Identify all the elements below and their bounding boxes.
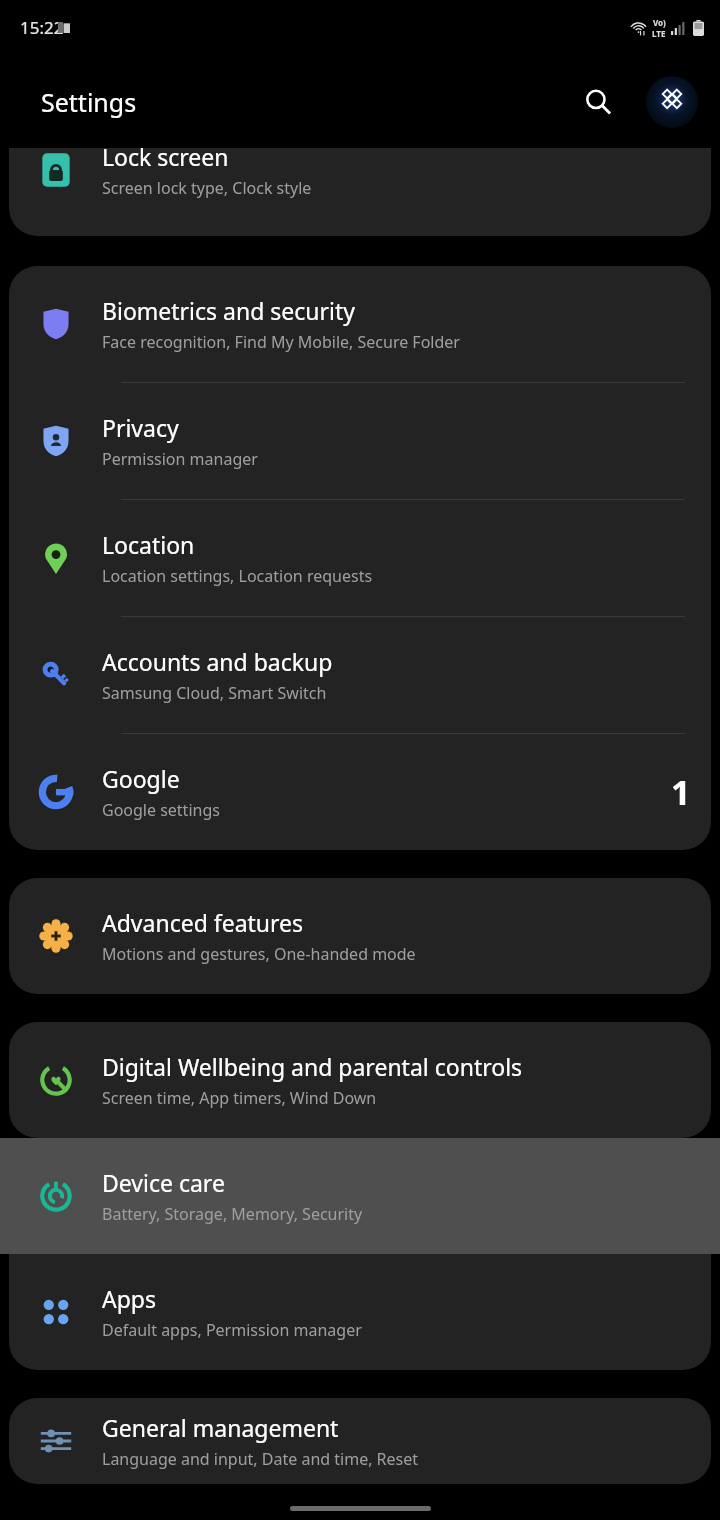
- staticText: Advanced features: [102, 907, 304, 938]
- staticText: Accounts and backup: [102, 646, 333, 677]
- staticText: Samsung Cloud, Smart Switch: [102, 682, 327, 704]
- staticText: Digital Wellbeing and parental controls: [102, 1051, 523, 1082]
- staticText: Language and input, Date and time, Reset: [102, 1448, 419, 1470]
- staticText: Biometrics and security: [102, 295, 356, 326]
- button[interactable]: Lock screen: [9, 148, 711, 214]
- staticText: Face recognition, Find My Mobile, Secure…: [102, 331, 460, 353]
- staticText: Screen time, App timers, Wind Down: [102, 1087, 377, 1109]
- button[interactable]: Biometrics and security: [9, 266, 711, 382]
- button[interactable]: Apps: [9, 1254, 711, 1370]
- button[interactable]: Digital Wellbeing and parental controls: [9, 1022, 711, 1138]
- button[interactable]: Accounts and backup: [9, 617, 711, 733]
- staticText: Battery, Storage, Memory, Security: [102, 1203, 363, 1225]
- staticText: Location: [102, 529, 195, 560]
- staticText: Lock screen: [102, 148, 229, 172]
- staticText: Device care: [102, 1167, 225, 1198]
- button[interactable]: General management: [9, 1398, 711, 1484]
- button[interactable]: Account profile: [646, 76, 698, 128]
- staticText: Screen lock type, Clock style: [102, 177, 312, 199]
- staticText: General management: [102, 1412, 339, 1443]
- staticText: 1: [671, 769, 691, 815]
- staticText: Settings: [41, 85, 137, 119]
- button[interactable]: Location: [9, 500, 711, 616]
- staticText: Google: [102, 763, 180, 794]
- staticText: Privacy: [102, 412, 179, 443]
- staticText: Motions and gestures, One-handed mode: [102, 943, 416, 965]
- button[interactable]: Search: [574, 78, 622, 126]
- staticText: 15:22: [20, 16, 64, 39]
- staticText: Vo): [653, 17, 666, 28]
- staticText: LTE: [652, 28, 666, 39]
- button[interactable]: Google: [9, 734, 711, 850]
- staticText: Default apps, Permission manager: [102, 1319, 362, 1341]
- staticText: Google settings: [102, 799, 220, 821]
- staticText: Apps: [102, 1283, 157, 1314]
- staticText: Permission manager: [102, 448, 258, 470]
- staticText: Location settings, Location requests: [102, 565, 373, 587]
- button[interactable]: Advanced features: [9, 878, 711, 994]
- button[interactable]: Device care: [0, 1138, 720, 1254]
- button[interactable]: Privacy: [9, 383, 711, 499]
